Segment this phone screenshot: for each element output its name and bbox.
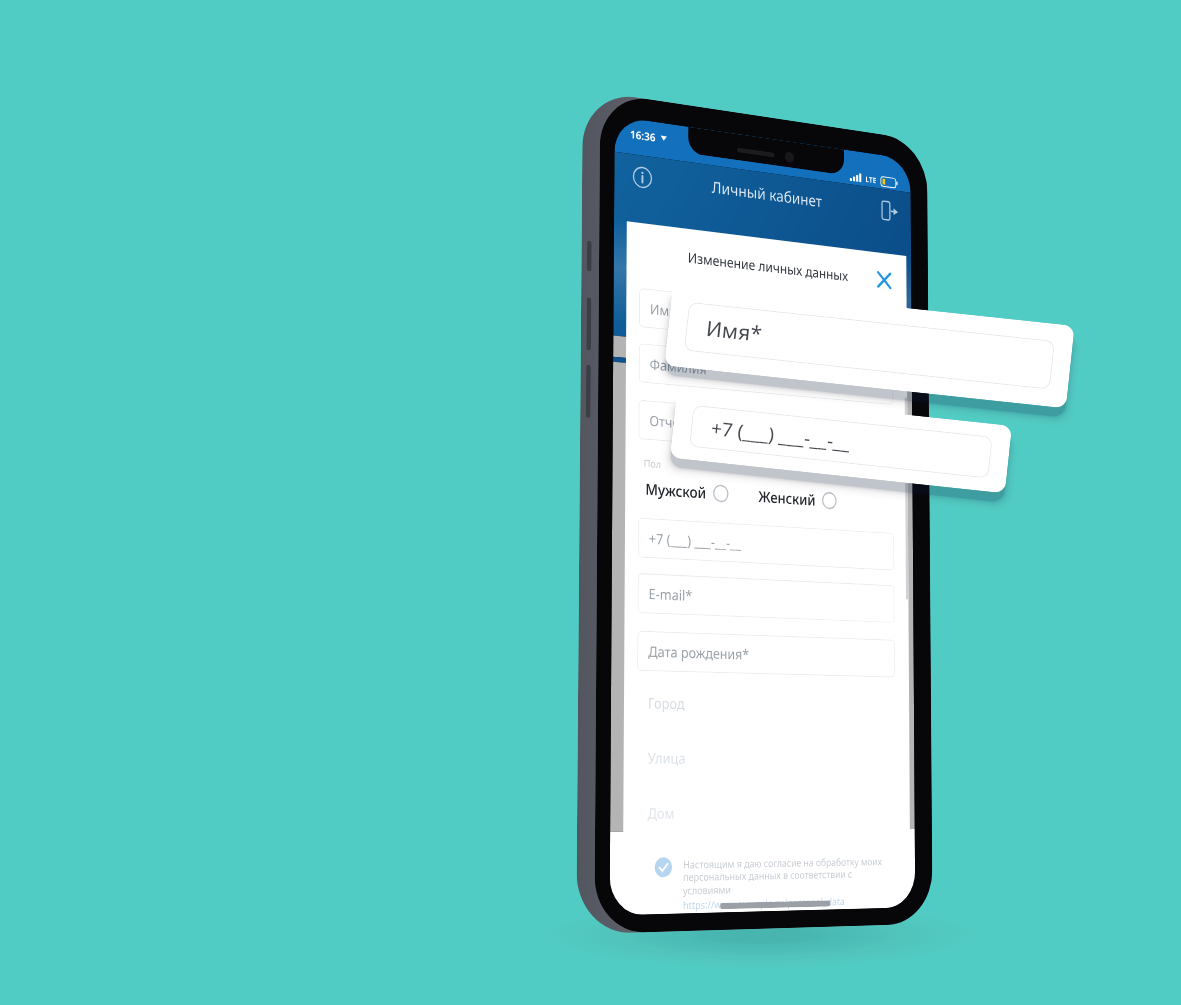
staticText: 16:36 (630, 126, 656, 145)
staticText: Имя* (705, 314, 764, 349)
staticText: +7 (___) ___-__-__ (649, 528, 741, 553)
button[interactable]: Фамилия* (639, 343, 893, 405)
button[interactable]: +7 (___) ___-__-__ (689, 405, 993, 478)
staticText: Имя* (650, 299, 684, 322)
staticText: Дата рождения* (648, 641, 750, 664)
staticText: Отчество (649, 411, 706, 434)
staticText: LTE (865, 173, 877, 185)
staticText: Мужской (645, 478, 707, 503)
button[interactable]: Выход (878, 197, 900, 224)
button[interactable]: Имя* (639, 288, 893, 353)
staticText: Настоящим я даю согласие на обработку мо… (683, 854, 882, 898)
button[interactable]: Имя* (684, 302, 1055, 390)
button[interactable]: Город (637, 675, 895, 733)
button[interactable]: E-mail* (637, 573, 895, 623)
staticText: E-mail* (648, 584, 693, 605)
staticText: Фамилия* (650, 354, 714, 379)
staticText: Дом (647, 803, 675, 823)
staticText: Изменение личных данных (688, 248, 849, 285)
button[interactable]: Настоящим я даю согласие на обработку мо… (654, 854, 896, 913)
button[interactable]: Мужской (645, 478, 729, 504)
button[interactable]: +7 (___) ___-__-__ (638, 518, 894, 571)
staticText: Город (648, 693, 685, 713)
button[interactable]: Отчество (638, 400, 894, 459)
button[interactable]: Информация (631, 163, 654, 192)
button[interactable]: Закрыть (875, 268, 893, 291)
staticText: Улица (648, 748, 686, 768)
button[interactable]: Женский (758, 486, 837, 511)
staticText: Пол (644, 456, 662, 471)
staticText: Личный кабинет (712, 176, 823, 212)
staticText: Женский (758, 486, 816, 509)
staticText: +7 (___) ___-__-__ (710, 415, 852, 456)
staticText: https://www.example.ru/personal_data (683, 894, 845, 912)
button[interactable]: Дата рождения* (637, 630, 895, 678)
